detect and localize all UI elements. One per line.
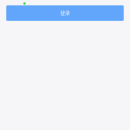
staticText: 登录 (60, 10, 70, 16)
button[interactable]: 登录 (6, 5, 124, 21)
